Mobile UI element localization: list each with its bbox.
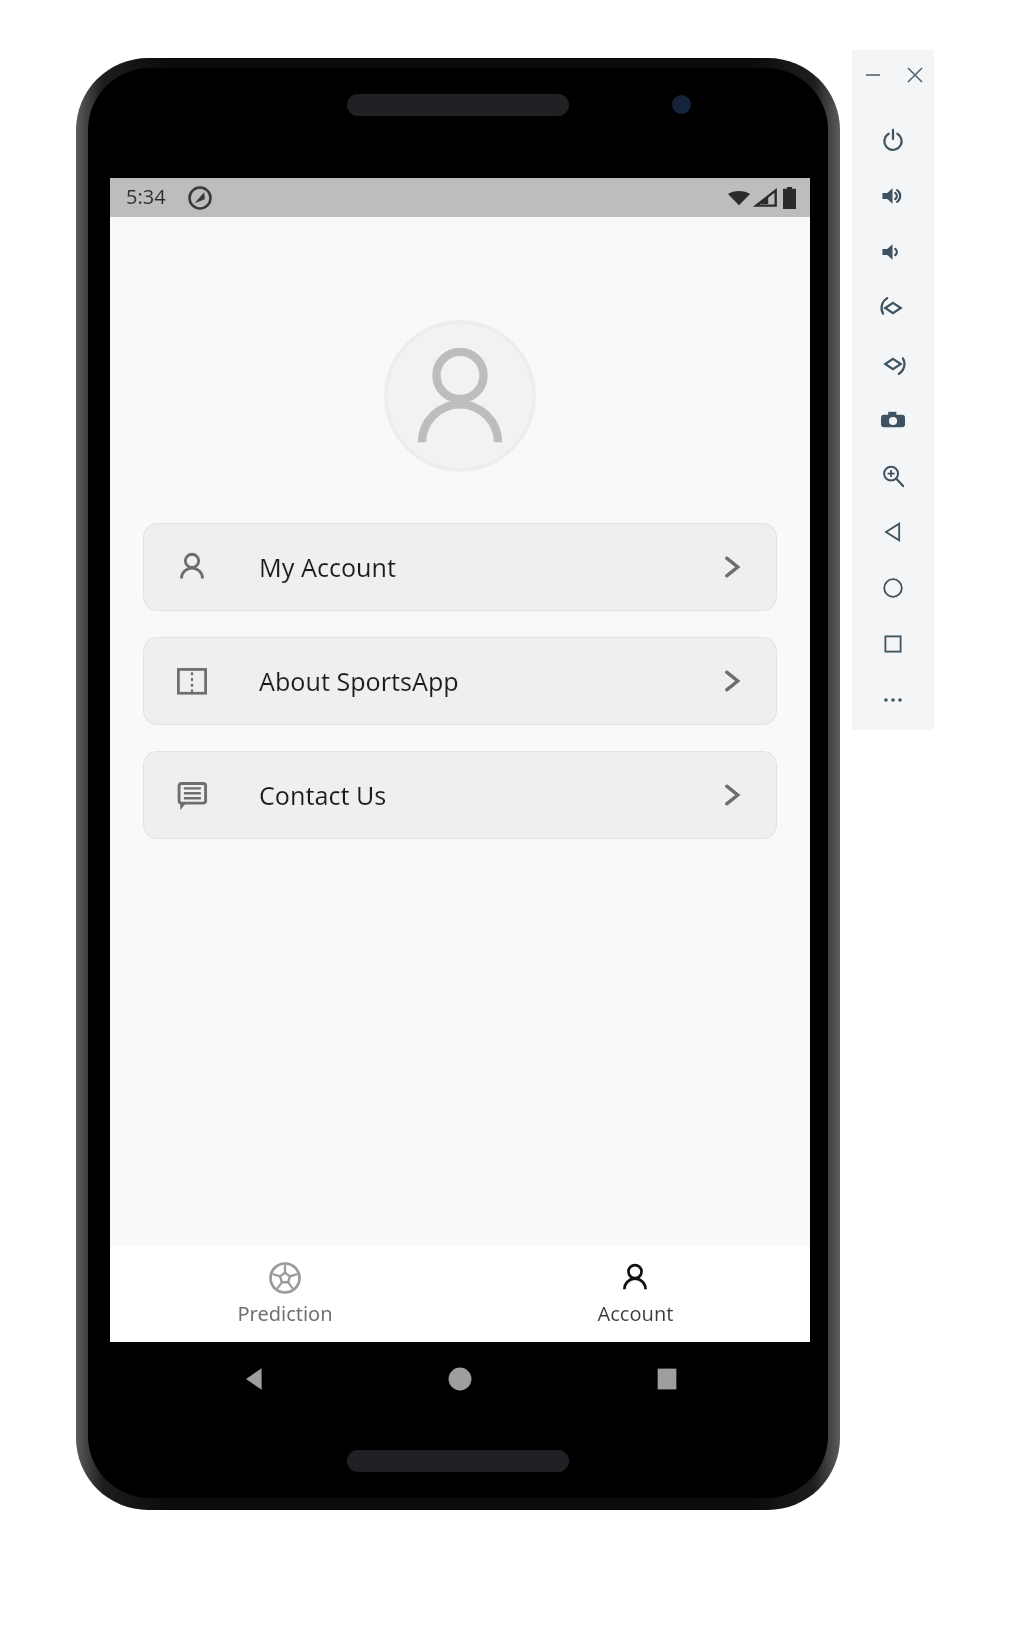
button[interactable]: Home <box>852 560 934 616</box>
button[interactable]: Account <box>460 1246 810 1342</box>
button[interactable]: Overview <box>852 616 934 672</box>
button[interactable]: Screenshot <box>852 392 934 448</box>
staticText: Prediction <box>237 1300 333 1327</box>
button[interactable]: Rotate right <box>852 336 934 392</box>
staticText: About SportsApp <box>259 664 459 698</box>
button[interactable]: More <box>852 672 934 728</box>
button[interactable]: Home <box>447 1366 473 1392</box>
button[interactable]: Back <box>240 1364 270 1394</box>
button[interactable]: Close <box>908 68 922 82</box>
button[interactable]: Zoom <box>852 448 934 504</box>
button[interactable]: Contact Us <box>143 751 777 839</box>
staticText: Contact Us <box>259 778 387 812</box>
button[interactable]: Recent apps <box>654 1366 680 1392</box>
button[interactable]: Power <box>852 112 934 168</box>
staticText: My Account <box>259 550 396 584</box>
staticText: 5:34 <box>126 183 166 210</box>
button[interactable]: Volume up <box>852 168 934 224</box>
button[interactable]: Volume down <box>852 224 934 280</box>
button[interactable]: Prediction <box>110 1246 460 1342</box>
button[interactable]: About SportsApp <box>143 637 777 725</box>
button[interactable]: My Account <box>143 523 777 611</box>
staticText: Account <box>597 1300 674 1327</box>
button[interactable]: Back <box>852 504 934 560</box>
button[interactable]: Minimize <box>866 68 880 82</box>
button[interactable]: Rotate left <box>852 280 934 336</box>
